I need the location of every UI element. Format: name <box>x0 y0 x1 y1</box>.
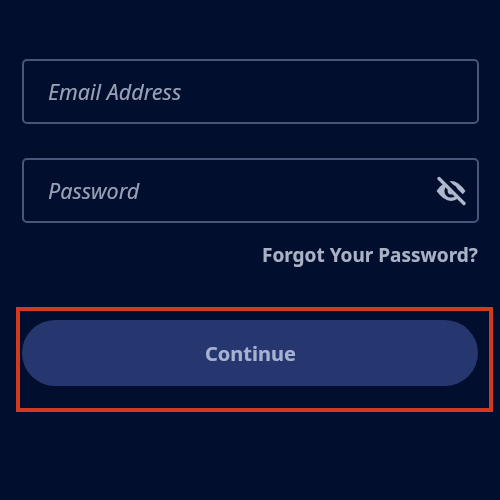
button[interactable]: Password <box>22 158 479 223</box>
staticText: Email Address <box>48 77 182 106</box>
button[interactable]: Forgot Your Password? <box>262 242 478 268</box>
staticText: Password <box>48 176 140 205</box>
button[interactable]: Continue <box>22 320 478 386</box>
staticText: Continue <box>205 340 296 367</box>
button[interactable]: Email Address <box>22 59 479 124</box>
button[interactable] <box>434 174 468 208</box>
